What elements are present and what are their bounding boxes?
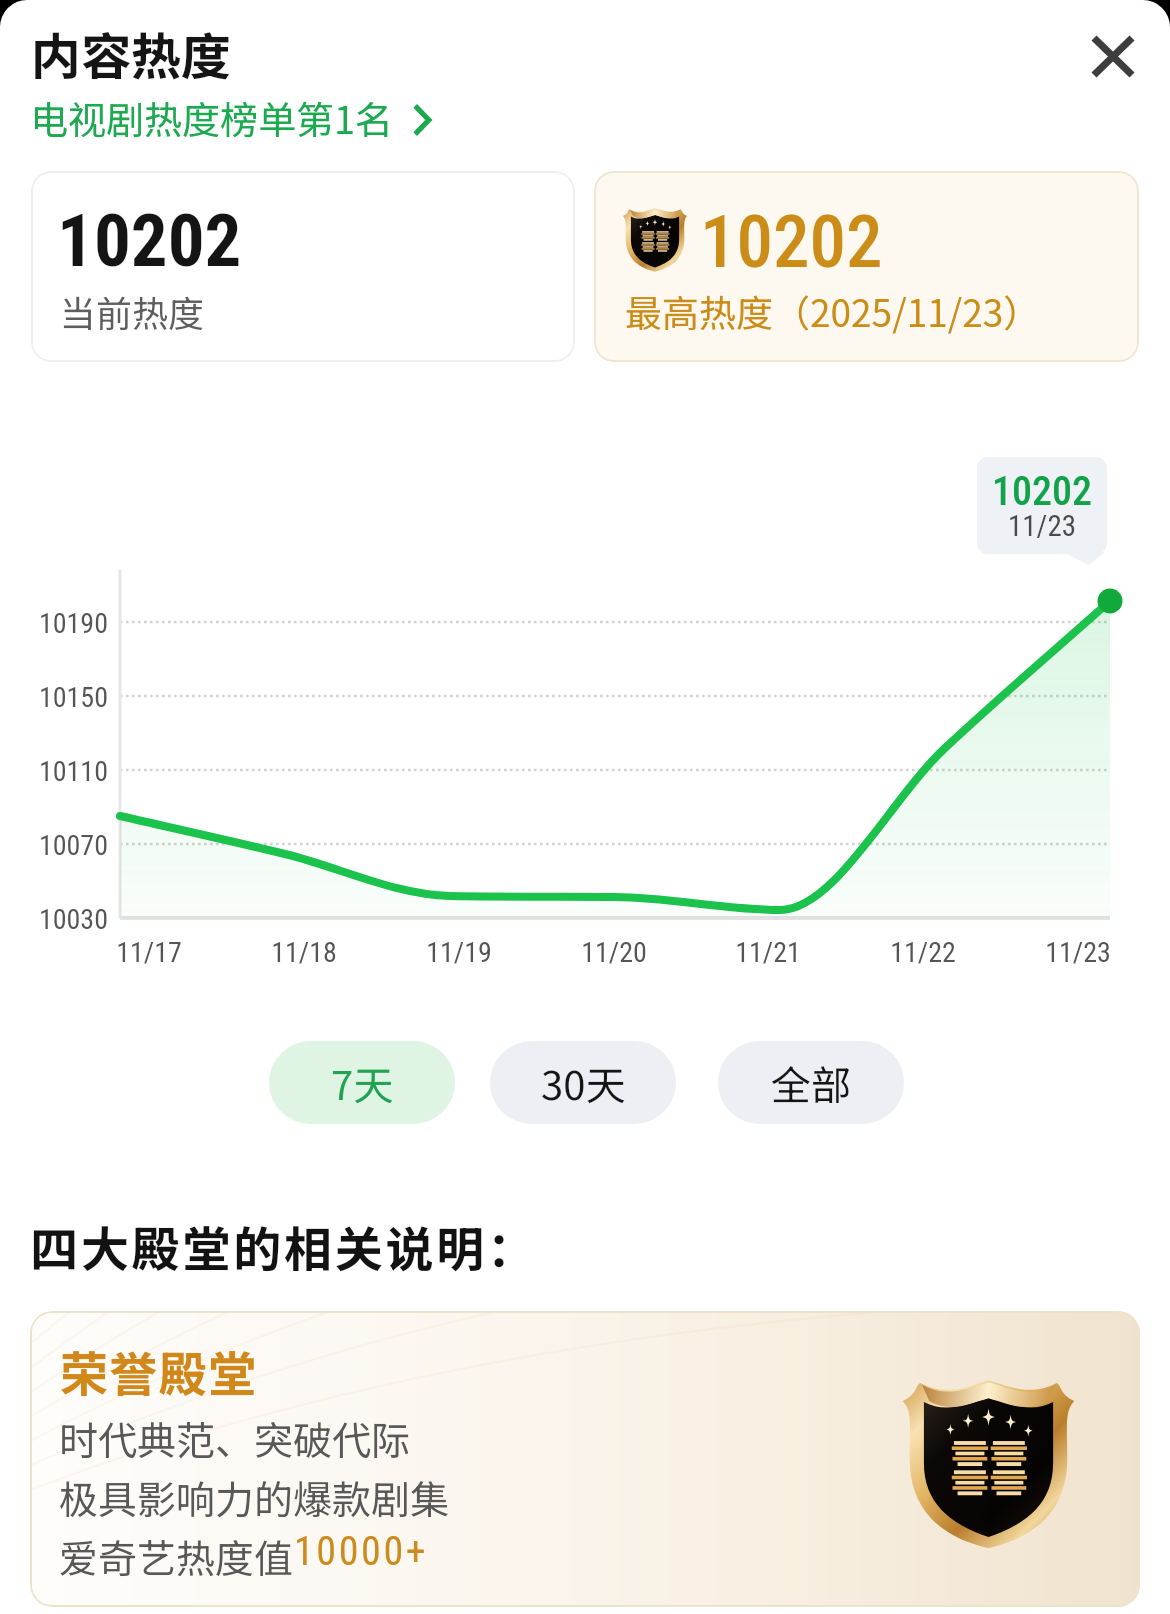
staticText: 电视剧热度榜单第1名: [30, 90, 394, 145]
staticText: 11/22: [853, 936, 993, 969]
staticText: 11/17: [79, 936, 219, 969]
staticText: 10190: [0, 607, 108, 640]
staticText: 四大殿堂的相关说明：: [30, 1211, 539, 1281]
staticText: 30天: [541, 1054, 626, 1112]
button[interactable]: 荣誉殿堂: [30, 1311, 1140, 1607]
button[interactable]: 10202: [594, 171, 1139, 362]
staticText: 10202: [57, 198, 242, 284]
staticText: 10000+: [294, 1528, 429, 1575]
staticText: 当前热度: [60, 285, 205, 337]
staticText: 爱奇艺热度值: [59, 1528, 294, 1584]
staticText: 10202: [700, 199, 883, 285]
staticText: 时代典范、突破代际: [59, 1410, 411, 1466]
staticText: 10150: [0, 681, 108, 714]
button[interactable]: 10202: [31, 171, 575, 362]
staticText: 最高热度（2025/11/23）: [625, 284, 1041, 338]
staticText: 11/23: [1008, 936, 1148, 969]
button[interactable]: 30天: [490, 1041, 676, 1124]
staticText: 11/23: [977, 509, 1107, 543]
staticText: 7天: [331, 1054, 394, 1112]
staticText: 10070: [0, 829, 108, 862]
staticText: 极具影响力的爆款剧集: [59, 1469, 450, 1525]
staticText: 10030: [0, 903, 108, 936]
button[interactable]: 电视剧热度榜单第1名: [30, 90, 431, 145]
staticText: 11/19: [389, 936, 529, 969]
button[interactable]: Close: [1073, 16, 1153, 96]
button[interactable]: 7天: [269, 1041, 455, 1124]
staticText: 11/18: [234, 936, 374, 969]
button[interactable]: 内容热度: [31, 17, 231, 89]
staticText: 11/21: [698, 936, 838, 969]
staticText: 10202: [977, 468, 1107, 515]
button[interactable]: 全部: [718, 1041, 904, 1124]
staticText: 内容热度: [31, 17, 231, 89]
staticText: 荣誉殿堂: [60, 1336, 258, 1406]
staticText: 10110: [0, 755, 108, 788]
staticText: 全部: [771, 1054, 851, 1112]
staticText: 11/20: [544, 936, 684, 969]
